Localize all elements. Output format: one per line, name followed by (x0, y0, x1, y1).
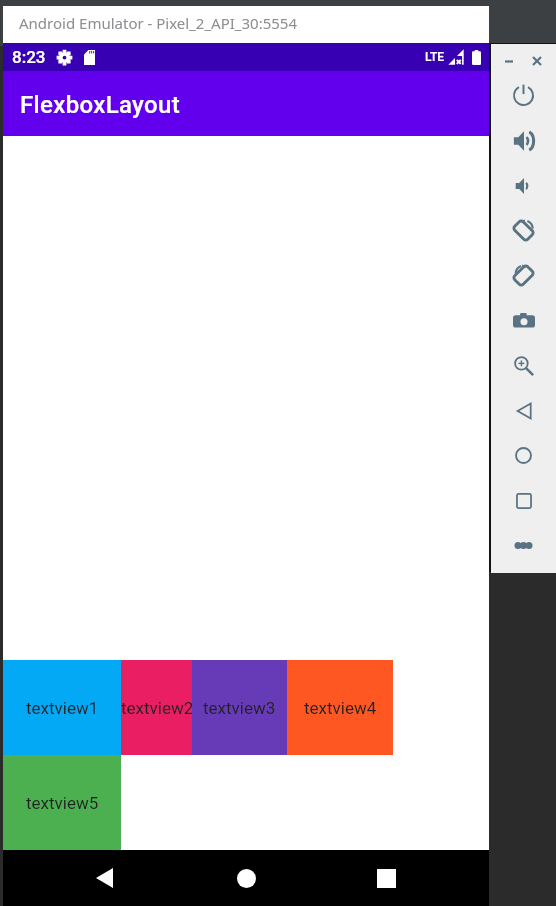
button[interactable]: textview1 (3, 660, 121, 755)
button[interactable]: Home (222, 850, 270, 906)
staticText: FlexboxLayout (20, 91, 180, 119)
button[interactable]: Rotate right (492, 253, 555, 298)
button[interactable]: Overview (492, 478, 555, 523)
button[interactable]: textview3 (192, 660, 287, 755)
staticText: textview3 (203, 698, 276, 718)
button[interactable]: Volume down (492, 163, 555, 208)
button[interactable]: Back (492, 388, 555, 433)
button[interactable]: Power (492, 73, 555, 118)
button[interactable]: textview5 (3, 755, 121, 850)
button[interactable]: textview4 (287, 660, 393, 755)
button[interactable]: textview2 (121, 660, 192, 755)
staticText: LTE (425, 50, 445, 64)
button[interactable]: Take screenshot (492, 298, 555, 343)
button[interactable]: Back (80, 850, 128, 906)
staticText: textview5 (26, 793, 99, 813)
staticText: Android Emulator - Pixel_2_API_30:5554 (19, 13, 297, 33)
button[interactable]: Close (526, 50, 548, 72)
button[interactable]: Volume up (492, 118, 555, 163)
button[interactable]: Minimize (498, 50, 520, 72)
button[interactable]: Zoom (492, 343, 555, 388)
button[interactable]: Rotate left (492, 208, 555, 253)
staticText: textview4 (304, 698, 377, 718)
staticText: textview2 (121, 698, 192, 718)
button[interactable]: More (492, 523, 555, 568)
button[interactable]: Home (492, 433, 555, 478)
staticText: 8:23 (12, 47, 46, 67)
button[interactable]: Recent apps (362, 850, 410, 906)
staticText: textview1 (26, 698, 99, 718)
